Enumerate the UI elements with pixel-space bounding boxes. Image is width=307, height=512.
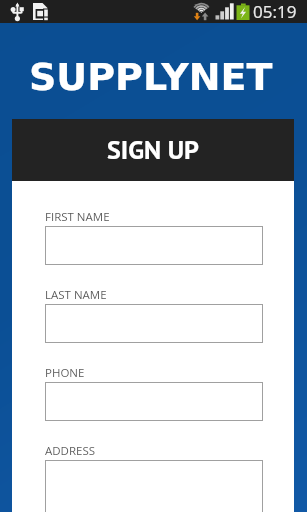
button[interactable] — [45, 460, 263, 512]
staticText: LAST NAME — [45, 287, 107, 303]
staticText: ADDRESS — [45, 443, 96, 459]
staticText: FIRST NAME — [45, 209, 110, 225]
button[interactable]: SIGN UP — [12, 119, 294, 181]
staticText: SUPPLYNET — [29, 55, 273, 99]
other: Status icons — [0, 0, 307, 23]
button[interactable] — [45, 226, 263, 265]
staticText: PHONE — [45, 365, 85, 381]
button[interactable] — [45, 304, 263, 343]
staticText: SIGN UP — [107, 133, 199, 167]
staticText: 05:19 — [253, 0, 297, 22]
button[interactable] — [45, 382, 263, 421]
